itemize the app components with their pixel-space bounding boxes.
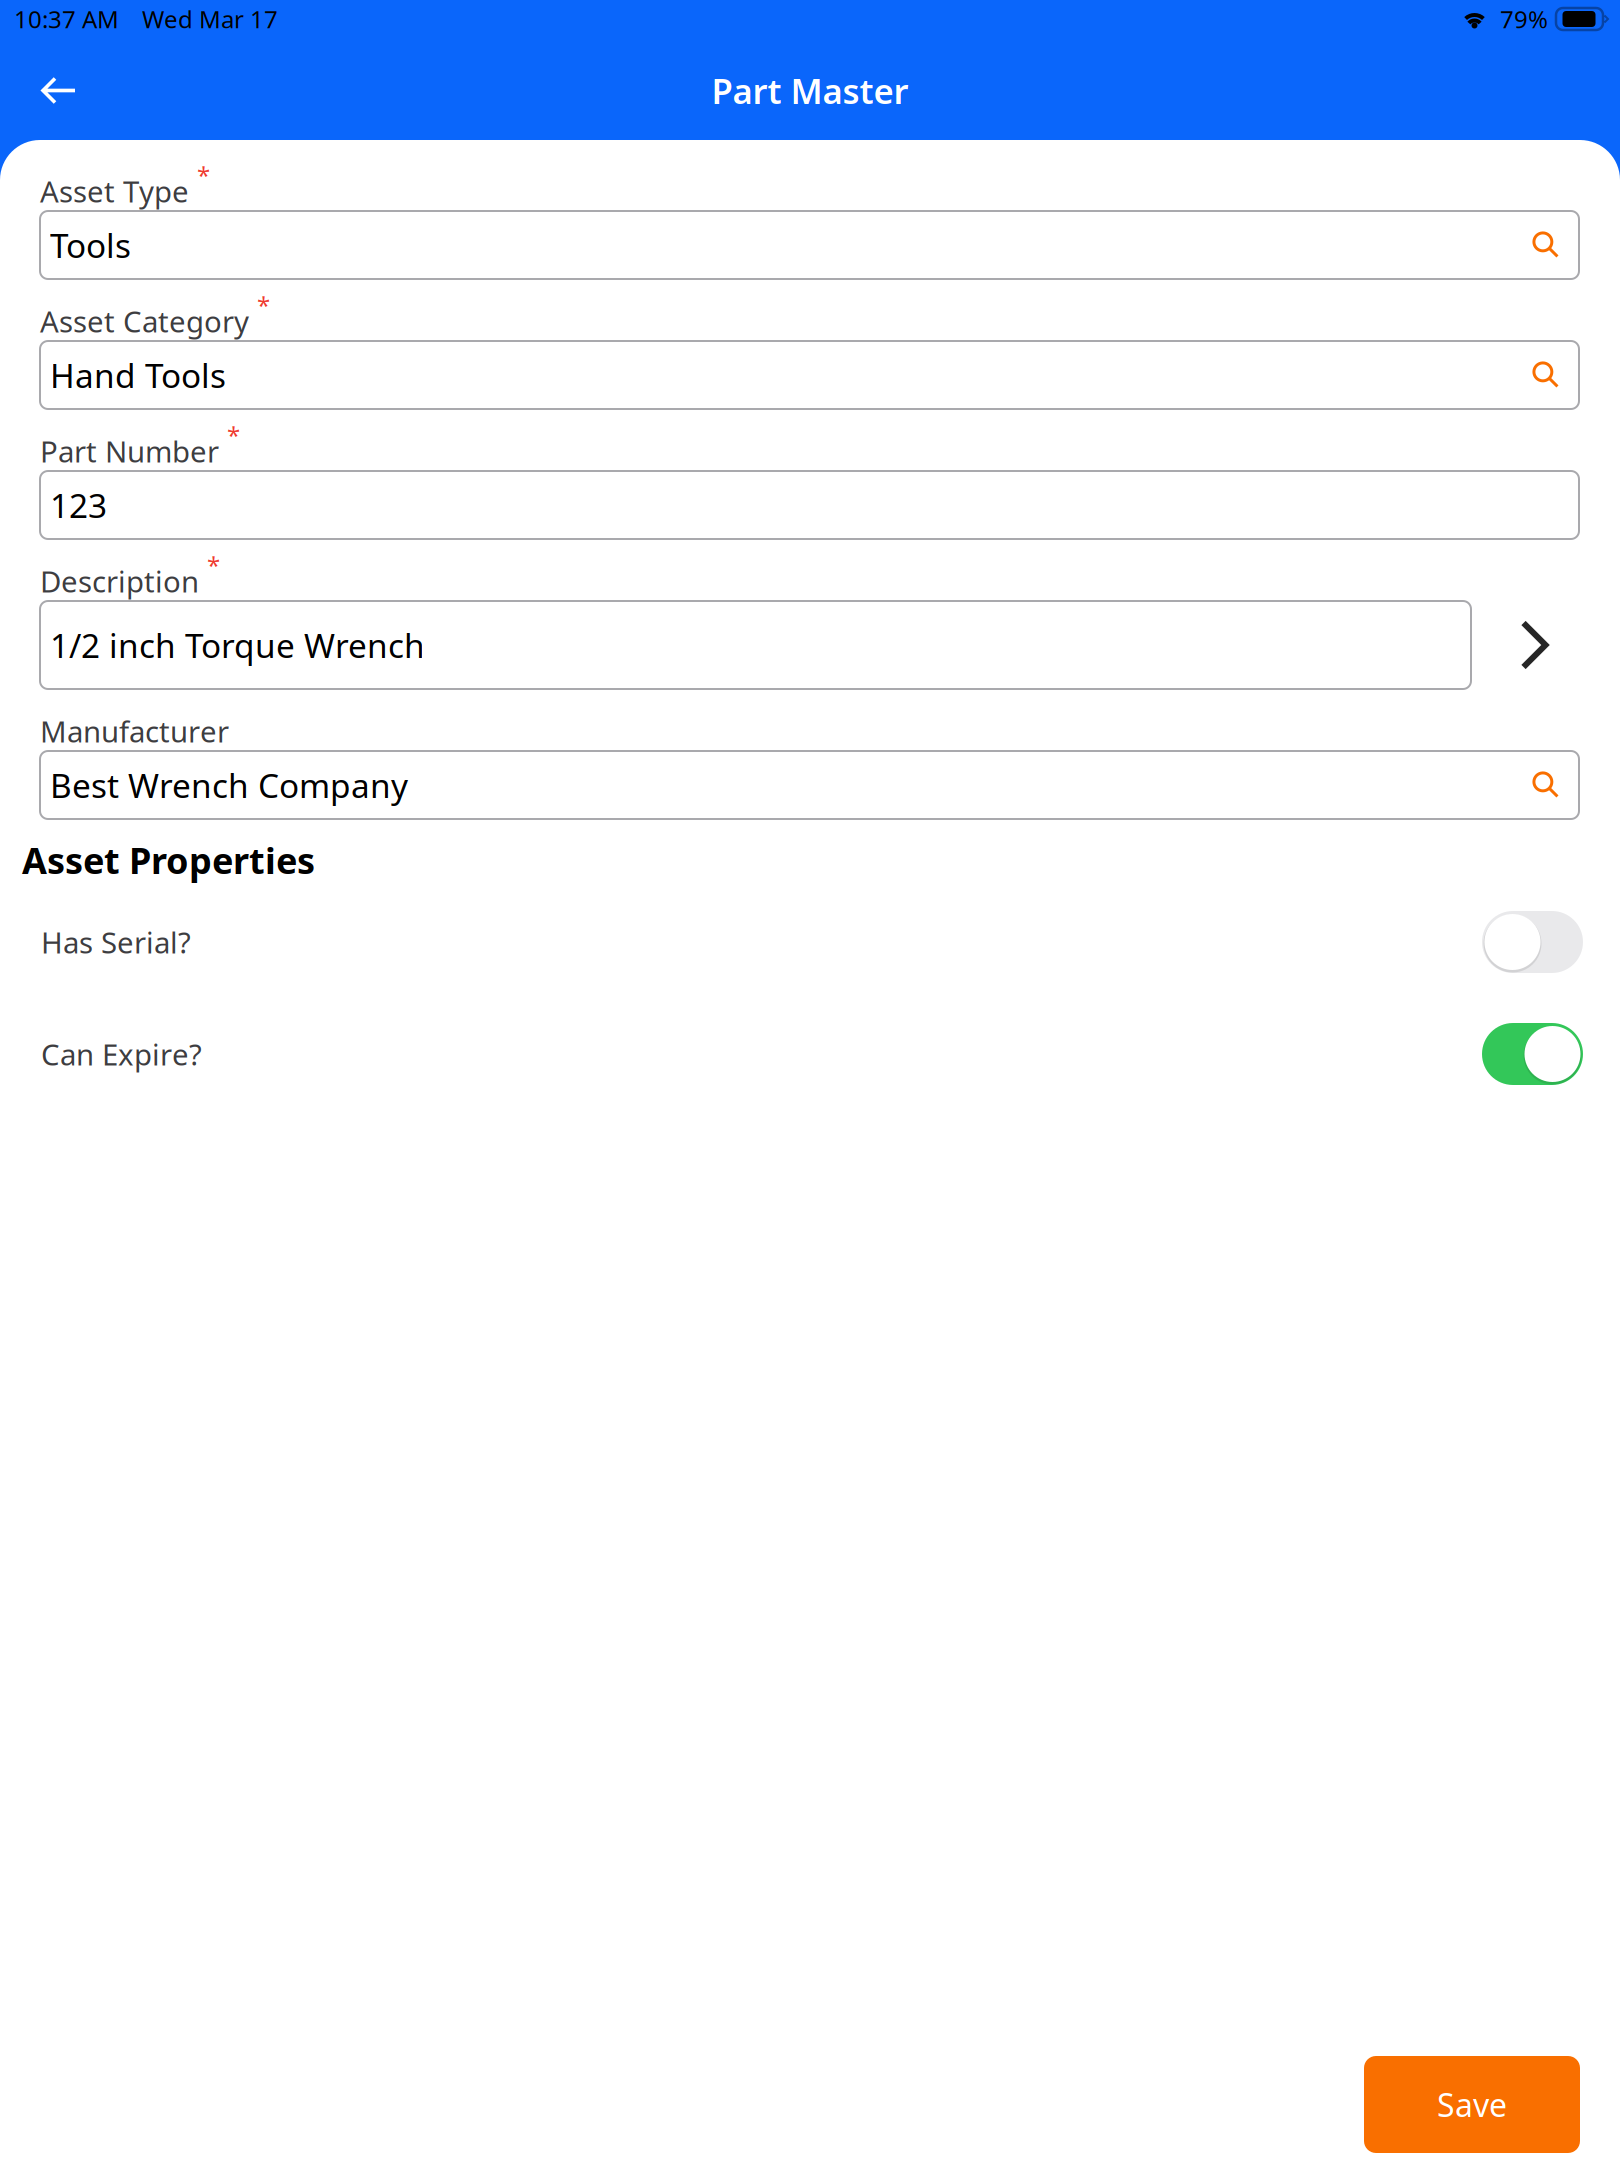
staticText: Manufacturer (40, 711, 229, 750)
button[interactable]: Back (0, 42, 114, 138)
staticText: Best Wrench Company (50, 763, 408, 807)
button[interactable]: Can Expire? (0, 998, 1620, 1110)
staticText: Has Serial? (41, 922, 191, 961)
staticText: Asset Properties (22, 836, 315, 884)
button[interactable]: Open description (1491, 601, 1579, 689)
button[interactable]: Asset Category (40, 301, 1579, 409)
staticText: 79% (1500, 3, 1548, 35)
button[interactable]: Asset Type (40, 171, 1579, 279)
staticText: * (197, 159, 210, 191)
staticText: Can Expire? (41, 1034, 202, 1073)
button[interactable]: Manufacturer (40, 711, 1579, 819)
staticText: Wed Mar 17 (142, 3, 278, 35)
staticText: 10:37 AM (14, 3, 119, 35)
staticText: 1/2 inch Torque Wrench (50, 623, 425, 667)
staticText: Description (40, 561, 199, 600)
staticText: * (227, 419, 240, 451)
button[interactable]: 1/2 inch Torque Wrench (40, 601, 1471, 689)
staticText: Asset Category (40, 301, 249, 340)
button[interactable]: Part Number (40, 431, 1579, 539)
staticText: * (257, 289, 270, 321)
staticText: Tools (50, 223, 131, 267)
button[interactable]: Save (1364, 2056, 1580, 2153)
staticText: Part Master (711, 67, 908, 113)
button[interactable]: Has Serial? (0, 886, 1620, 998)
staticText: Asset Type (40, 171, 189, 210)
staticText: Hand Tools (50, 353, 226, 397)
staticText: Part Number (40, 431, 219, 470)
staticText: * (207, 549, 220, 581)
staticText: 123 (50, 483, 107, 527)
staticText: Save (1437, 2083, 1507, 2126)
